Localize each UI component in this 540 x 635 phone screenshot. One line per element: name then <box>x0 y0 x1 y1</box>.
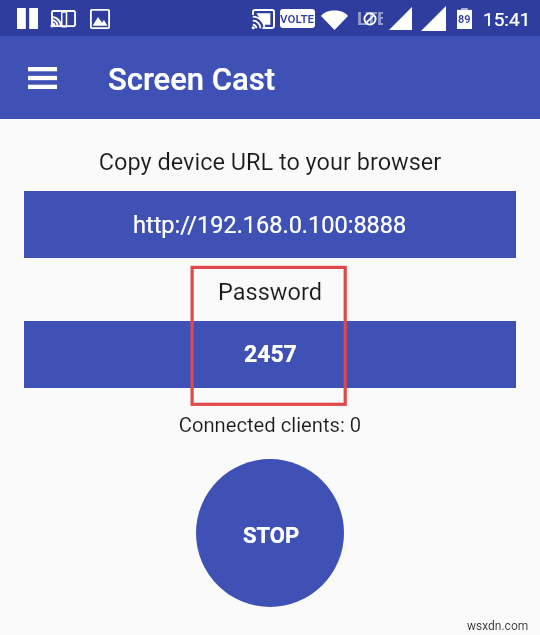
staticText: Password <box>0 278 540 306</box>
staticText: Connected clients: 0 <box>0 413 540 437</box>
staticText: STOP <box>243 523 300 549</box>
button[interactable]: Open navigation menu <box>14 50 70 106</box>
staticText: VOLTE <box>280 12 315 25</box>
button[interactable]: http://192.168.0.100:8888 <box>24 191 516 258</box>
staticText: wsxdn.com <box>467 619 529 633</box>
staticText: 2457 <box>244 341 297 368</box>
staticText: http://192.168.0.100:8888 <box>133 211 407 239</box>
staticText: 89 <box>458 13 471 26</box>
staticText: LTE <box>357 7 383 28</box>
button[interactable]: 2457 <box>24 321 516 388</box>
staticText: 15:41 <box>483 8 531 30</box>
button[interactable]: STOP <box>196 459 344 607</box>
staticText: Screen Cast <box>108 61 276 97</box>
staticText: Copy device URL to your browser <box>0 148 540 176</box>
